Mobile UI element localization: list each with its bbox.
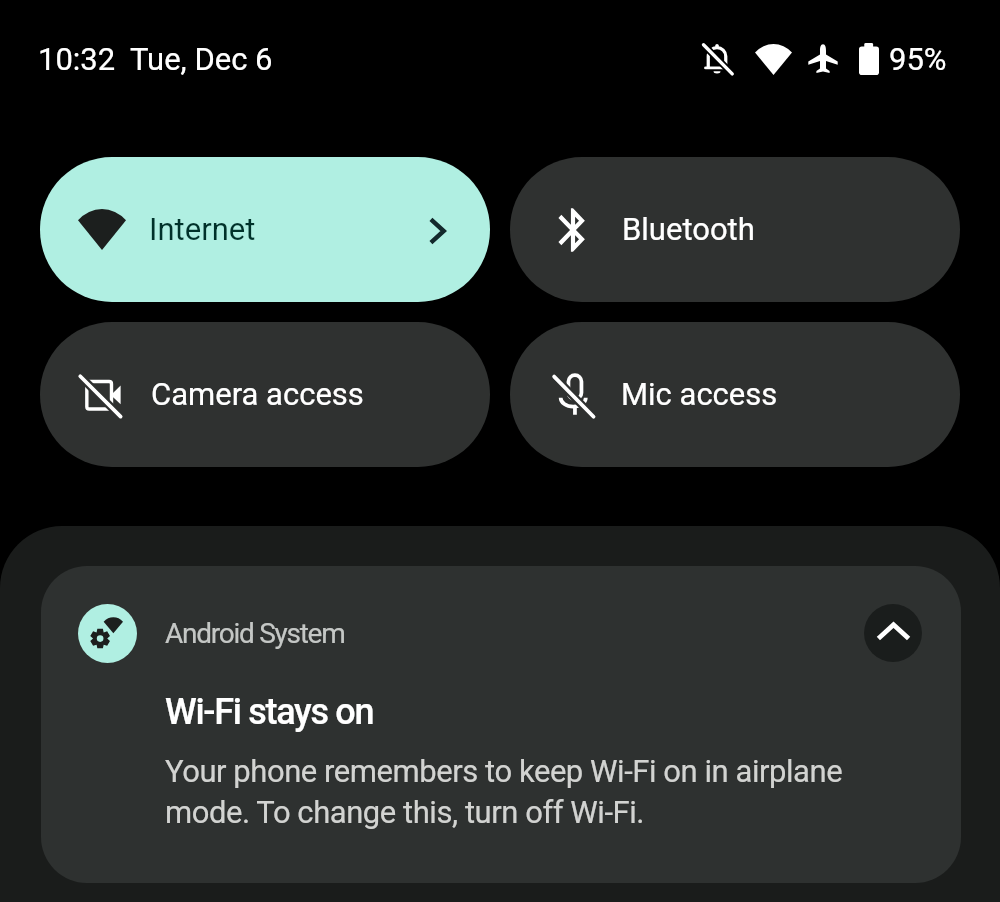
staticText: Tue, Dec 6: [130, 41, 273, 77]
button[interactable]: Collapse notification: [864, 604, 922, 662]
staticText: Your phone remembers to keep Wi-Fi on in…: [165, 753, 843, 830]
staticText: Camera access: [151, 376, 364, 412]
staticText: Android System: [165, 617, 345, 650]
staticText: Internet: [149, 211, 256, 247]
button[interactable]: Camera access: [40, 322, 490, 467]
staticText: Mic access: [621, 376, 778, 412]
button[interactable]: Mic access: [510, 322, 960, 467]
button[interactable]: Android System: [41, 566, 961, 883]
button[interactable]: Internet: [40, 157, 490, 302]
staticText: Bluetooth: [622, 211, 755, 247]
staticText: Wi-Fi stays on: [165, 691, 374, 733]
button[interactable]: Bluetooth: [510, 157, 960, 302]
staticText: 10:32: [38, 41, 116, 77]
staticText: 95%: [889, 41, 947, 77]
